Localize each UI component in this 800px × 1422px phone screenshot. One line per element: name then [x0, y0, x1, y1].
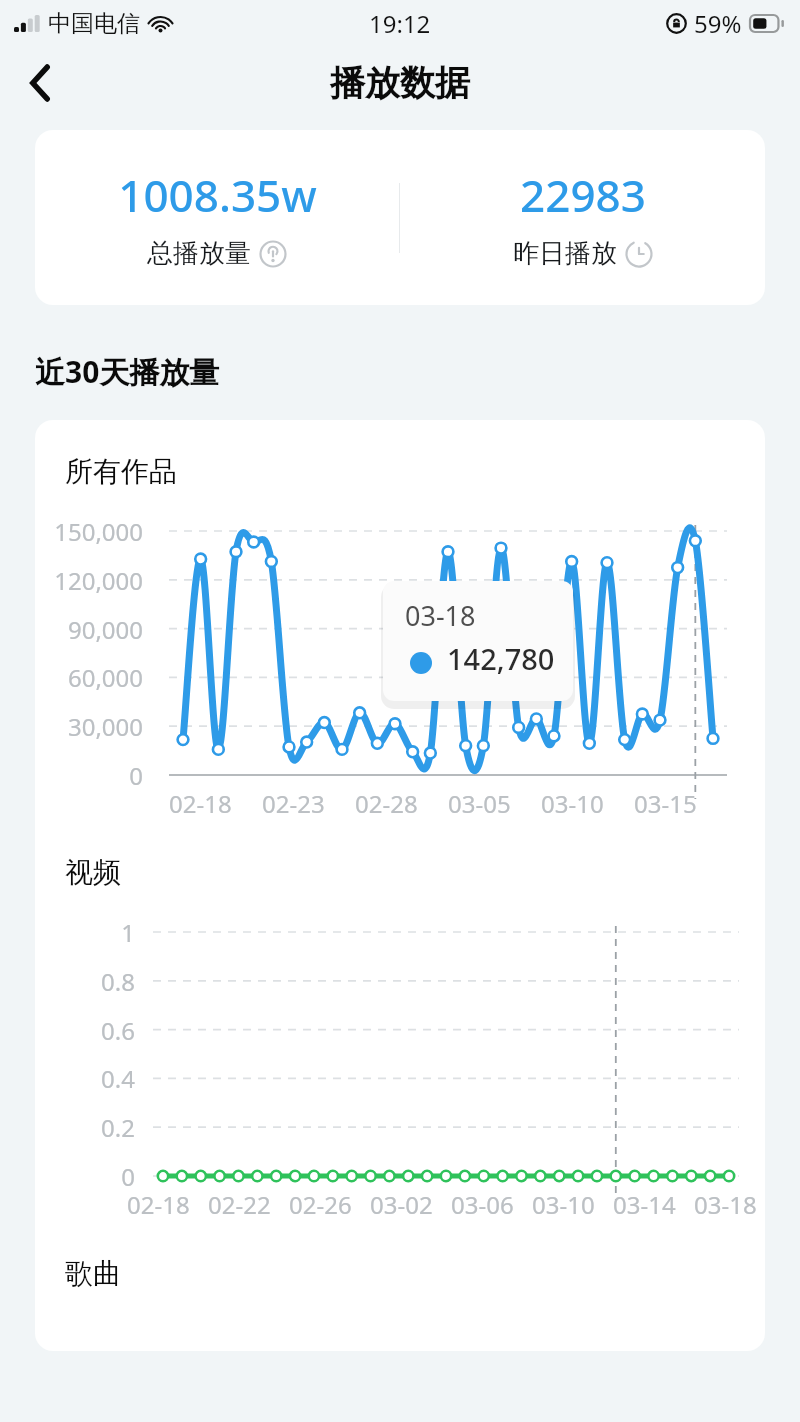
button[interactable]: Back [10, 53, 70, 113]
staticText: 03-14 [613, 1188, 676, 1221]
staticText: 所有作品 [65, 454, 177, 489]
staticText: 150,000 [35, 515, 143, 548]
staticText: 03-15 [634, 787, 697, 820]
staticText: 120,000 [35, 564, 143, 597]
staticText: 03-02 [370, 1188, 433, 1221]
staticText: 0.6 [35, 1014, 135, 1047]
staticText: 昨日播放 [513, 237, 617, 270]
staticText: 02-18 [169, 787, 232, 820]
staticText: 0 [35, 759, 143, 792]
staticText: 02-18 [127, 1188, 190, 1221]
staticText: 22983 [520, 165, 646, 225]
staticText: 03-10 [541, 787, 604, 820]
staticText: 02-22 [208, 1188, 271, 1221]
staticText: 02-23 [262, 787, 325, 820]
staticText: 0.4 [35, 1062, 135, 1095]
staticText: 59% [694, 7, 742, 40]
staticText: 30,000 [35, 710, 143, 743]
other: Help [259, 240, 287, 268]
staticText: 播放数据 [330, 61, 470, 105]
staticText: 0.2 [35, 1111, 135, 1144]
staticText: 0.8 [35, 965, 135, 998]
staticText: 19:12 [369, 7, 431, 40]
staticText: 0 [35, 1160, 135, 1193]
staticText: 03-18 [405, 597, 476, 634]
staticText: 近30天播放量 [35, 351, 220, 392]
staticText: 02-28 [355, 787, 418, 820]
staticText: 视频 [65, 855, 121, 890]
staticText: 歌曲 [65, 1256, 121, 1291]
staticText: 90,000 [35, 613, 143, 646]
staticText: 60,000 [35, 661, 143, 694]
other: Yesterday [625, 240, 653, 268]
staticText: 03-06 [451, 1188, 514, 1221]
staticText: 02-26 [289, 1188, 352, 1221]
staticText: 03-05 [448, 787, 511, 820]
staticText: 03-18 [694, 1188, 757, 1221]
staticText: 03-10 [532, 1188, 595, 1221]
button[interactable]: 22983 [400, 130, 765, 305]
staticText: 中国电信 [48, 9, 140, 38]
staticText: 1008.35w [118, 165, 317, 225]
staticText: 1 [35, 916, 135, 949]
staticText: 142,780 [447, 639, 555, 678]
staticText: 总播放量 [147, 237, 251, 270]
button[interactable]: 1008.35w [35, 130, 399, 305]
